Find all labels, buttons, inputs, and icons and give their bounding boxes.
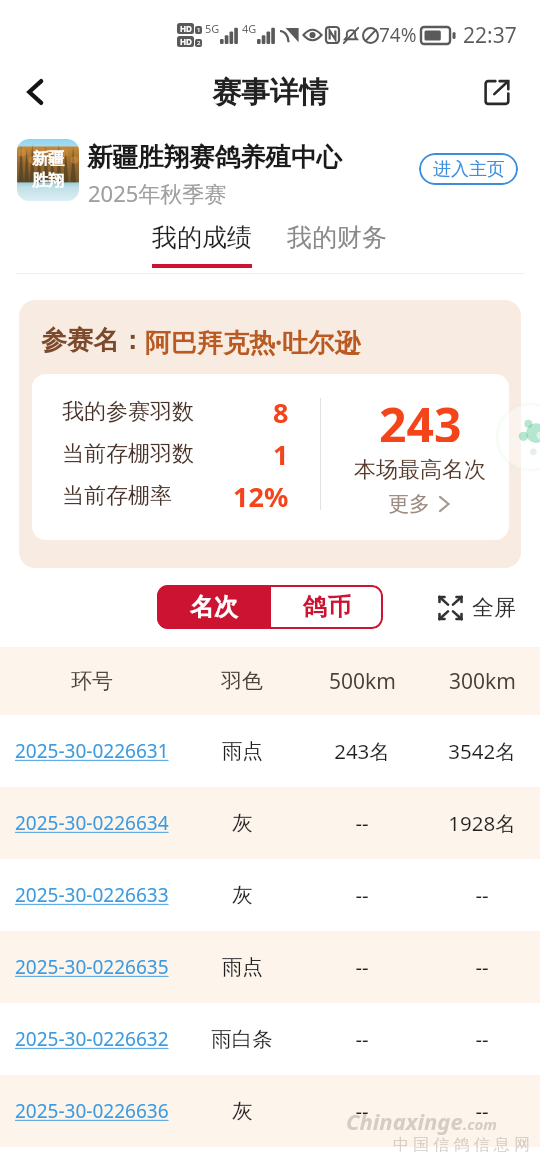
button[interactable]: 进入主页: [419, 153, 518, 185]
button[interactable]: [0, 715, 540, 787]
staticText: 4G: [242, 21, 257, 36]
staticText: 243名: [334, 737, 390, 765]
staticText: 3542名: [448, 737, 516, 765]
staticText: 我的成绩: [152, 222, 252, 253]
staticText: HD: [180, 36, 192, 47]
staticText: 赛事详情: [212, 74, 328, 111]
staticText: 我的参赛羽数: [62, 398, 194, 426]
staticText: 2025-30-0226636: [15, 1098, 169, 1124]
staticText: 1: [273, 436, 289, 468]
staticText: 500km: [329, 667, 396, 696]
button[interactable]: [0, 859, 540, 931]
staticText: 我的财务: [287, 222, 387, 253]
staticText: 雨点: [222, 738, 263, 764]
button[interactable]: 我的成绩: [150, 222, 254, 253]
button[interactable]: 全屏: [438, 592, 516, 624]
button[interactable]: Share: [473, 68, 521, 116]
staticText: 1928名: [448, 809, 516, 837]
staticText: 本场最高名次: [354, 456, 486, 484]
staticText: 雨白条: [211, 1026, 273, 1052]
button[interactable]: Translate: [497, 404, 540, 470]
staticText: 5G: [205, 21, 220, 36]
button[interactable]: 更多: [388, 491, 452, 517]
staticText: 2025-30-0226632: [15, 1026, 169, 1052]
staticText: 2025年秋季赛: [88, 178, 227, 208]
staticText: 新疆胜翔赛鸽养殖中心: [87, 141, 342, 173]
staticText: Chinaxinge: [346, 1106, 463, 1136]
staticText: 22:37: [463, 21, 517, 50]
staticText: 灰: [232, 882, 253, 908]
staticText: 鸽币: [303, 592, 351, 622]
staticText: --: [355, 881, 369, 909]
staticText: 灰: [232, 1098, 253, 1124]
staticText: 新疆: [32, 149, 64, 169]
staticText: 300km: [449, 667, 516, 696]
staticText: --: [355, 1025, 369, 1053]
staticText: --: [475, 953, 489, 981]
staticText: 灰: [232, 810, 253, 836]
staticText: 74%: [379, 22, 417, 48]
staticText: 2025-30-0226631: [15, 738, 169, 764]
button[interactable]: 新疆: [17, 139, 79, 201]
staticText: 2025-30-0226635: [15, 954, 169, 980]
staticText: 雨点: [222, 954, 263, 980]
staticText: --: [355, 809, 369, 837]
button[interactable]: [0, 931, 540, 1003]
staticText: --: [475, 1097, 489, 1125]
staticText: 2: [197, 39, 201, 47]
button[interactable]: 名次: [157, 585, 271, 629]
staticText: 更多: [388, 491, 430, 517]
staticText: 2025-30-0226633: [15, 882, 169, 908]
staticText: 参赛名：: [41, 324, 145, 357]
staticText: 当前存棚羽数: [62, 440, 194, 468]
staticText: 1: [197, 26, 201, 34]
staticText: 2025-30-0226634: [15, 810, 169, 836]
staticText: .com: [463, 1114, 497, 1134]
staticText: 全屏: [472, 594, 516, 622]
button[interactable]: 鸽币: [271, 585, 383, 629]
staticText: 羽色: [221, 668, 263, 694]
staticText: 胜翔: [32, 171, 64, 191]
staticText: --: [355, 953, 369, 981]
button[interactable]: [0, 1003, 540, 1075]
staticText: 环号: [71, 668, 113, 694]
staticText: 12%: [233, 478, 289, 510]
button[interactable]: Back: [12, 68, 60, 116]
button[interactable]: [0, 787, 540, 859]
staticText: 中 国 信 鸽 信 息 网: [393, 1133, 530, 1155]
staticText: --: [475, 881, 489, 909]
staticText: 8: [273, 394, 289, 426]
button[interactable]: 我的财务: [285, 222, 389, 253]
staticText: 当前存棚率: [62, 482, 172, 510]
staticText: 名次: [190, 592, 238, 622]
staticText: 进入主页: [433, 158, 505, 181]
staticText: --: [475, 1025, 489, 1053]
staticText: 阿巴拜克热·吐尔逊: [145, 324, 361, 360]
staticText: 243: [379, 392, 462, 442]
staticText: --: [355, 1097, 369, 1125]
button[interactable]: [0, 1075, 540, 1147]
staticText: HD: [180, 23, 192, 34]
